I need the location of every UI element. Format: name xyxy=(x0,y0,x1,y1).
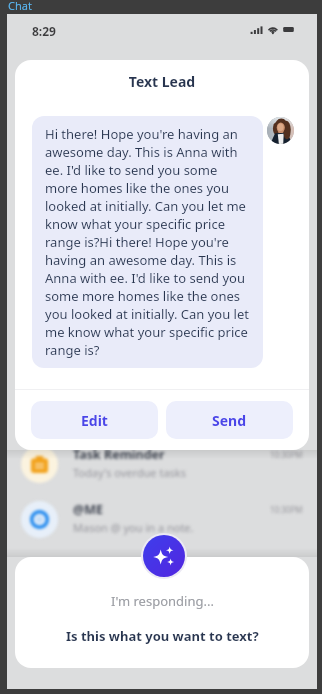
staticText: Hi there! Hope you're having an awesome … xyxy=(45,125,250,359)
staticText: Send xyxy=(212,411,247,430)
staticText: Today's overdue tasks xyxy=(73,465,186,480)
staticText: Text Lead xyxy=(15,72,309,91)
staticText: Task Reminder xyxy=(73,446,165,463)
staticText: @ME xyxy=(73,501,104,518)
staticText: 10:30PM xyxy=(270,449,303,460)
button[interactable]: Send xyxy=(166,401,293,439)
staticText: Is this what you want to text? xyxy=(66,627,259,645)
staticText: 10:30PM xyxy=(270,504,303,515)
staticText: Mason @ you in a note. xyxy=(73,520,194,535)
staticText: 8:29 xyxy=(32,23,56,39)
button[interactable]: AI assistant xyxy=(143,535,185,577)
button[interactable]: Task Reminder xyxy=(7,437,317,492)
staticText: I'm responding... xyxy=(111,592,214,610)
button[interactable]: @ME xyxy=(7,492,317,547)
button[interactable]: Edit xyxy=(31,401,158,439)
staticText: Edit xyxy=(81,411,108,430)
staticText: Chat xyxy=(8,0,32,13)
